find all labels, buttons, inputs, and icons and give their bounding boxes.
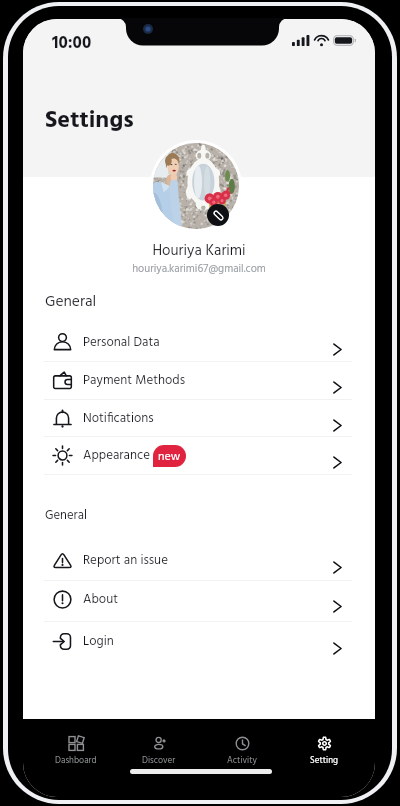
- other: Open: [333, 600, 342, 613]
- other: Open: [333, 381, 342, 394]
- button[interactable]: Edit profile photo: [207, 204, 229, 226]
- staticText: Report an issue: [83, 550, 168, 571]
- staticText: Personal Data: [83, 332, 160, 353]
- staticText: General: [45, 506, 87, 526]
- staticText: Houriya Karimi: [23, 239, 375, 263]
- other: Open: [333, 419, 342, 432]
- button[interactable]: Payment Methods: [23, 362, 375, 399]
- button[interactable]: Setting: [296, 736, 352, 768]
- staticText: Payment Methods: [83, 370, 186, 391]
- staticText: 10:00: [52, 30, 92, 57]
- button[interactable]: Activity: [214, 736, 270, 768]
- other: Open: [333, 642, 342, 655]
- staticText: Appearance: [83, 445, 150, 466]
- button[interactable]: Login: [23, 623, 375, 660]
- button[interactable]: About: [23, 581, 375, 618]
- staticText: Login: [83, 631, 114, 652]
- button[interactable]: Dashboard: [48, 736, 104, 768]
- staticText: Dashboard: [55, 754, 97, 768]
- staticText: new: [158, 447, 181, 466]
- staticText: About: [83, 589, 118, 610]
- button[interactable]: Report an issue: [23, 542, 375, 579]
- button[interactable]: Personal Data: [23, 324, 375, 361]
- other: Open: [333, 561, 342, 574]
- staticText: houriya.karimi67@gmail.com: [23, 260, 375, 278]
- staticText: General: [45, 290, 97, 315]
- staticText: Settings: [45, 102, 134, 140]
- button[interactable]: Appearance: [23, 437, 375, 474]
- staticText: Setting: [310, 754, 338, 768]
- staticText: Notifications: [83, 408, 154, 429]
- button[interactable]: Discover: [131, 736, 187, 768]
- other: Open: [333, 456, 342, 469]
- staticText: Activity: [227, 754, 257, 768]
- button[interactable]: Notifications: [23, 400, 375, 437]
- other: Open: [333, 343, 342, 356]
- staticText: Discover: [142, 754, 176, 768]
